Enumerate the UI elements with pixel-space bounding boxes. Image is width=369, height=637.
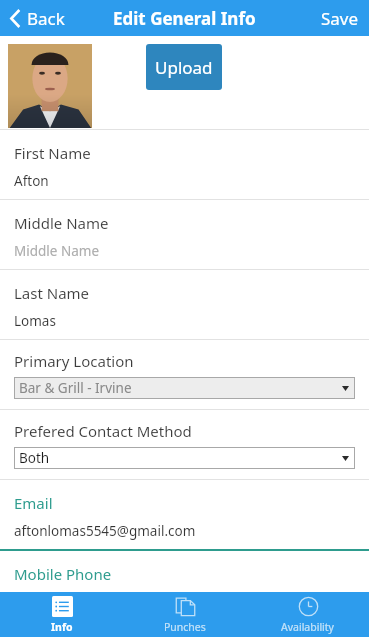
staticText: Middle Name — [14, 213, 109, 233]
button[interactable]: Primary Location — [0, 340, 369, 409]
staticText: Save — [321, 7, 359, 30]
staticText: Lomas — [14, 312, 56, 330]
staticText: Upload — [155, 56, 213, 79]
staticText: Mobile Phone — [14, 564, 112, 584]
staticText: Middle Name — [14, 242, 100, 260]
button[interactable]: Availability — [246, 592, 369, 637]
button[interactable]: Punches — [123, 592, 246, 637]
button[interactable]: Profile photo — [8, 44, 92, 128]
staticText: Info — [51, 620, 73, 634]
button[interactable]: Last Name — [0, 270, 369, 339]
staticText: Punches — [164, 620, 206, 634]
button[interactable]: Middle Name — [0, 200, 369, 269]
staticText: Bar & Grill - Irvine — [19, 379, 132, 397]
staticText: Edit General Info — [113, 7, 256, 30]
staticText: Email — [14, 493, 53, 513]
button[interactable]: Info — [0, 592, 123, 637]
staticText: Afton — [14, 172, 49, 190]
button[interactable]: Save — [311, 1, 369, 36]
button[interactable]: Prefered Contact Method — [0, 410, 369, 479]
button[interactable]: Upload — [146, 44, 222, 90]
staticText: First Name — [14, 143, 91, 163]
button[interactable]: Back — [0, 3, 75, 34]
staticText: Primary Location — [14, 351, 134, 371]
staticText: Availability — [281, 620, 334, 634]
button[interactable]: First Name — [0, 130, 369, 199]
staticText: Both — [19, 449, 50, 467]
button[interactable]: Email — [0, 480, 369, 549]
staticText: Last Name — [14, 283, 90, 303]
button[interactable]: Mobile Phone — [0, 551, 369, 592]
staticText: Back — [27, 7, 65, 30]
staticText: aftonlomas5545@gmail.com — [14, 522, 196, 540]
staticText: Prefered Contact Method — [14, 421, 192, 441]
